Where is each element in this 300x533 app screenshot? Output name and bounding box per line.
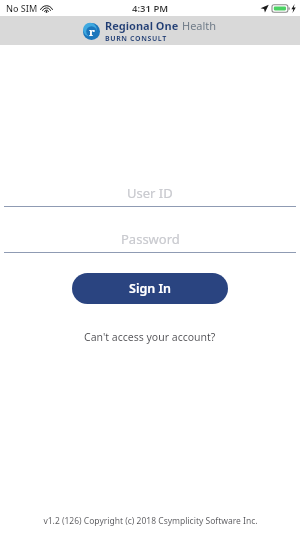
button[interactable]: Sign In bbox=[72, 273, 228, 304]
staticText: Sign In bbox=[129, 280, 172, 297]
staticText: Health bbox=[182, 18, 217, 33]
button[interactable]: Password bbox=[0, 228, 300, 253]
button[interactable]: User ID bbox=[0, 182, 300, 207]
staticText: 4:31 PM bbox=[132, 2, 169, 15]
staticText: No SIM bbox=[6, 2, 38, 14]
staticText: r bbox=[89, 24, 95, 39]
staticText: Regional One bbox=[105, 18, 179, 33]
button[interactable]: Can't access your account? bbox=[76, 327, 224, 347]
staticText: BURN CONSULT bbox=[105, 34, 167, 44]
staticText: Password bbox=[121, 230, 180, 248]
staticText: v1.2 (126) Copyright (c) 2018 Csymplicit… bbox=[43, 515, 258, 527]
staticText: User ID bbox=[127, 184, 173, 202]
staticText: Can't access your account? bbox=[84, 330, 216, 344]
